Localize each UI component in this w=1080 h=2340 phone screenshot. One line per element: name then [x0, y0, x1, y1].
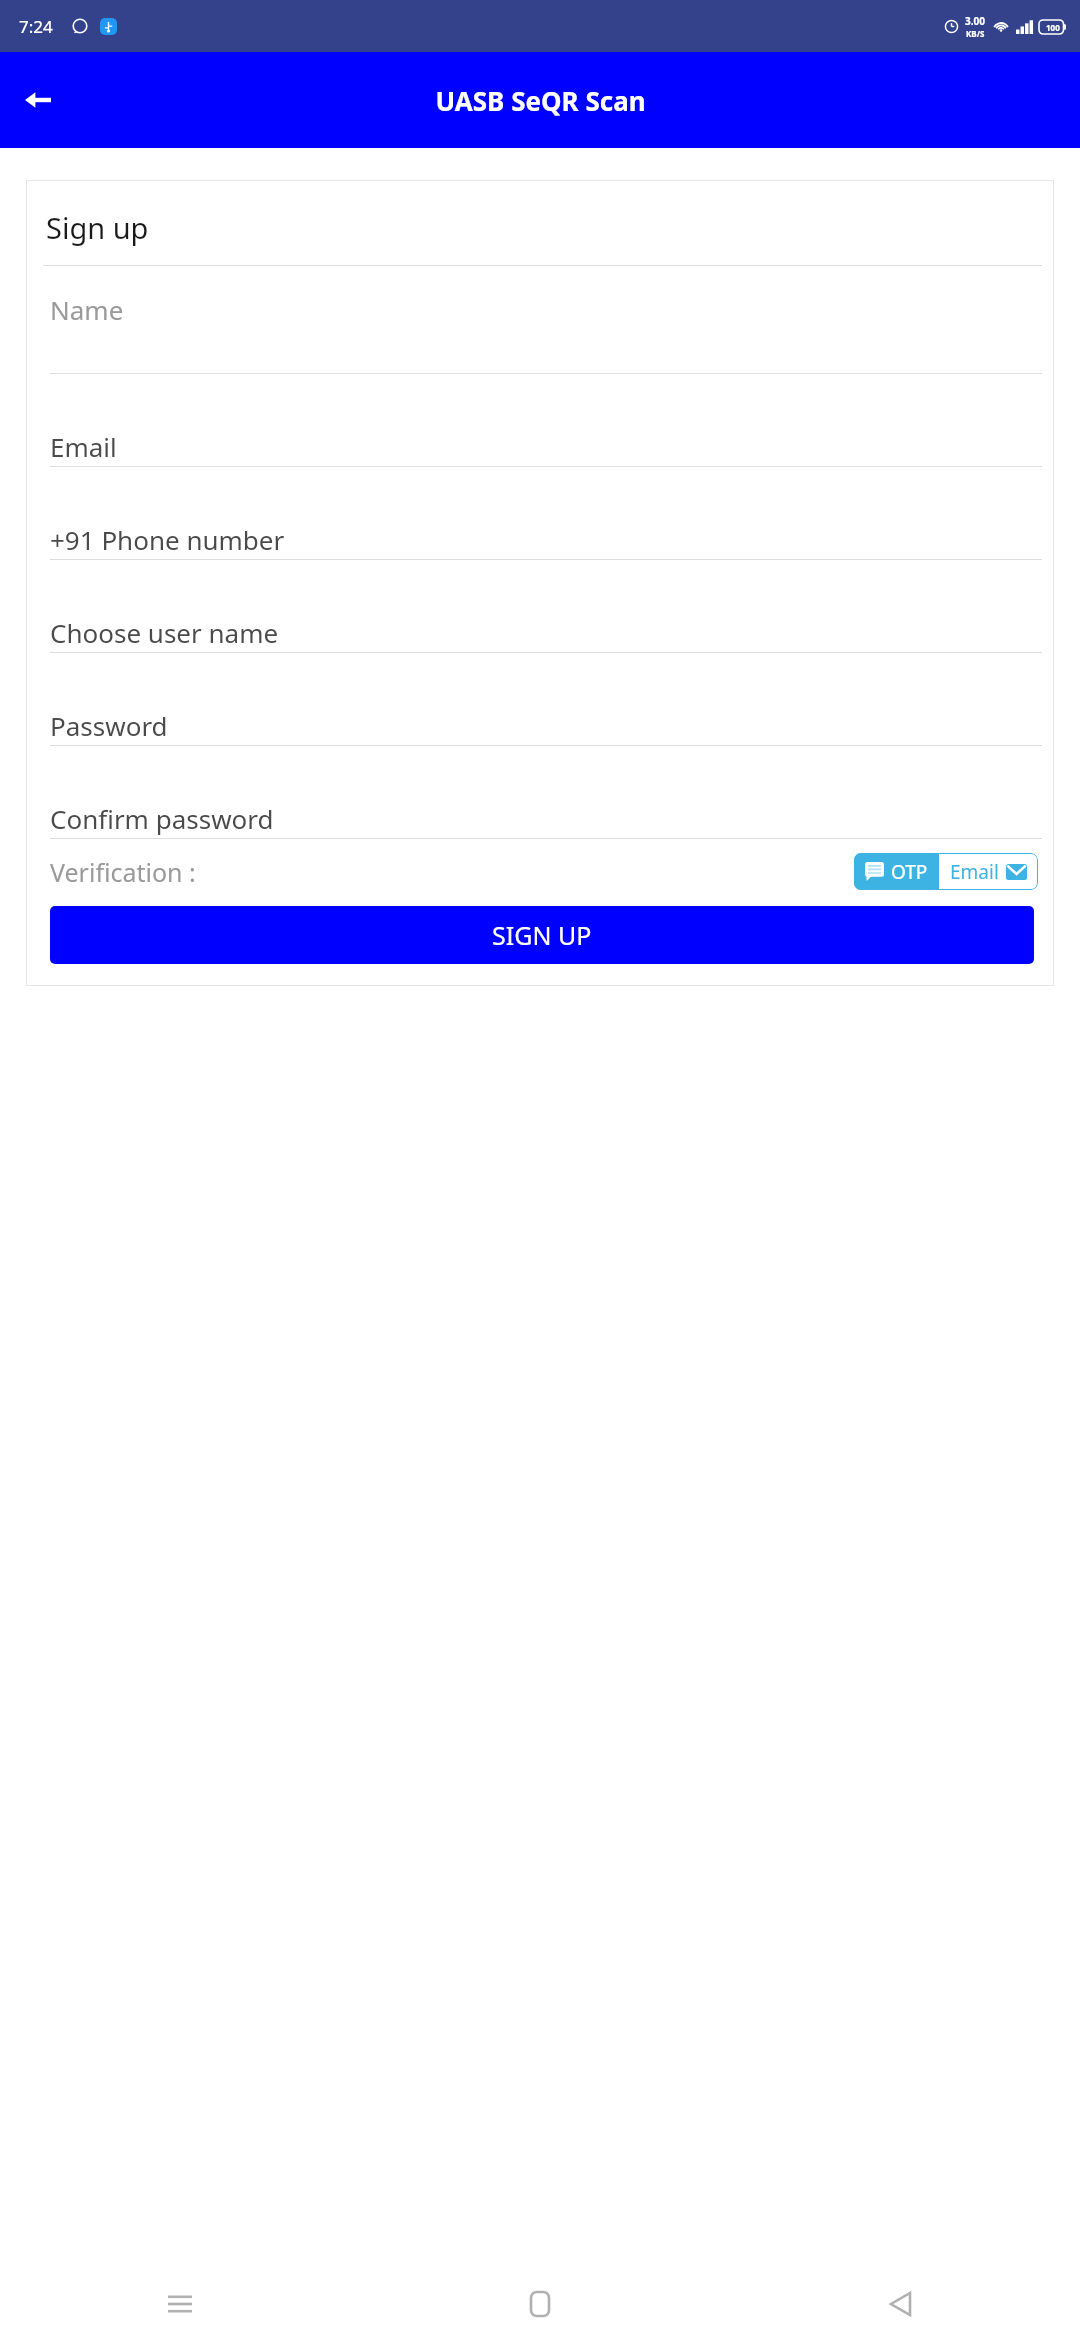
button[interactable]: Home — [360, 2268, 720, 2340]
staticText: Confirm password — [50, 801, 274, 836]
staticText: Choose user name — [50, 615, 279, 650]
staticText: 100 — [1046, 22, 1060, 33]
staticText: Email — [50, 429, 117, 464]
button[interactable]: OTP — [854, 853, 939, 890]
staticText: Sign up — [46, 208, 149, 247]
staticText: SIGN UP — [492, 918, 592, 952]
staticText: Verification : — [50, 855, 196, 889]
button[interactable]: Back — [14, 76, 62, 124]
staticText: OTP — [891, 859, 928, 885]
staticText: UASB SeQR Scan — [435, 83, 646, 118]
button[interactable]: Recents — [0, 2268, 360, 2340]
button[interactable]: SIGN UP — [50, 906, 1034, 964]
staticText: Password — [50, 708, 168, 743]
staticText: 3.00 — [965, 14, 985, 28]
staticText: KB/S — [966, 28, 985, 39]
staticText: Name — [50, 292, 124, 327]
staticText: Email — [950, 859, 999, 885]
button[interactable]: Email — [939, 853, 1038, 890]
button[interactable]: Back — [720, 2268, 1080, 2340]
staticText: 7:24 — [19, 15, 53, 38]
staticText: +91 Phone number — [50, 522, 285, 557]
